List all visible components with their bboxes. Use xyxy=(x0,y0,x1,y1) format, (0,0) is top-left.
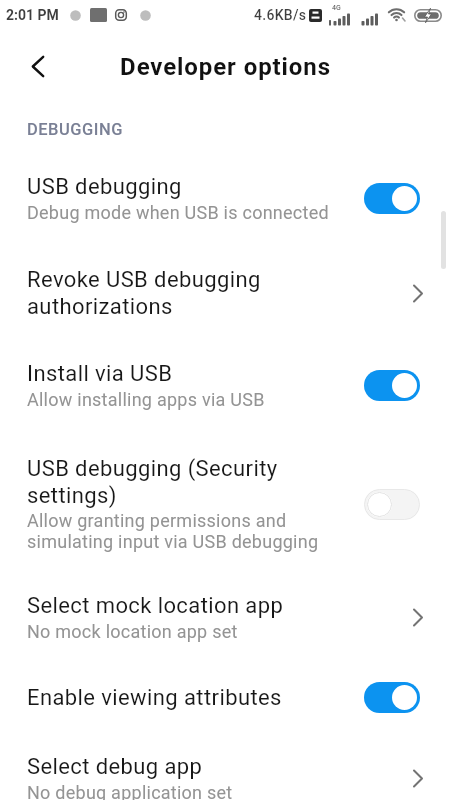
staticText: 2:01 PM xyxy=(6,7,59,23)
staticText: Enable viewing attributes xyxy=(27,685,282,711)
staticText: Allow granting permissions and simulatin… xyxy=(27,510,319,552)
button[interactable] xyxy=(32,56,44,77)
button[interactable]: Revoke USB debugging authorizations xyxy=(0,245,450,339)
button[interactable] xyxy=(364,682,420,713)
staticText: Revoke USB debugging authorizations xyxy=(27,267,261,319)
staticText: No debug application set xyxy=(27,782,233,800)
staticText: USB debugging (Security settings) xyxy=(27,456,278,508)
staticText: Debug mode when USB is connected xyxy=(27,202,329,223)
staticText: Install via USB xyxy=(27,361,173,387)
button[interactable]: Enable viewing attributes xyxy=(0,663,450,732)
button[interactable] xyxy=(364,183,420,214)
button[interactable]: USB debugging xyxy=(0,152,450,245)
button[interactable]: Select mock location app xyxy=(0,571,450,663)
staticText: DEBUGGING xyxy=(27,120,123,139)
staticText: 4G xyxy=(332,4,341,12)
staticText: Select debug app xyxy=(27,754,203,780)
button[interactable]: Install via USB xyxy=(0,339,450,434)
staticText: USB debugging xyxy=(27,174,182,200)
staticText: 4.6KB/s xyxy=(254,7,307,23)
staticText: Select mock location app xyxy=(27,593,284,619)
button[interactable] xyxy=(364,370,420,401)
staticText: Allow installing apps via USB xyxy=(27,389,265,410)
button[interactable]: Select debug app xyxy=(0,732,450,800)
button[interactable]: USB debugging (Security settings) xyxy=(0,434,450,571)
staticText: Developer options xyxy=(120,53,331,81)
button[interactable] xyxy=(364,489,420,520)
staticText: No mock location app set xyxy=(27,621,238,642)
